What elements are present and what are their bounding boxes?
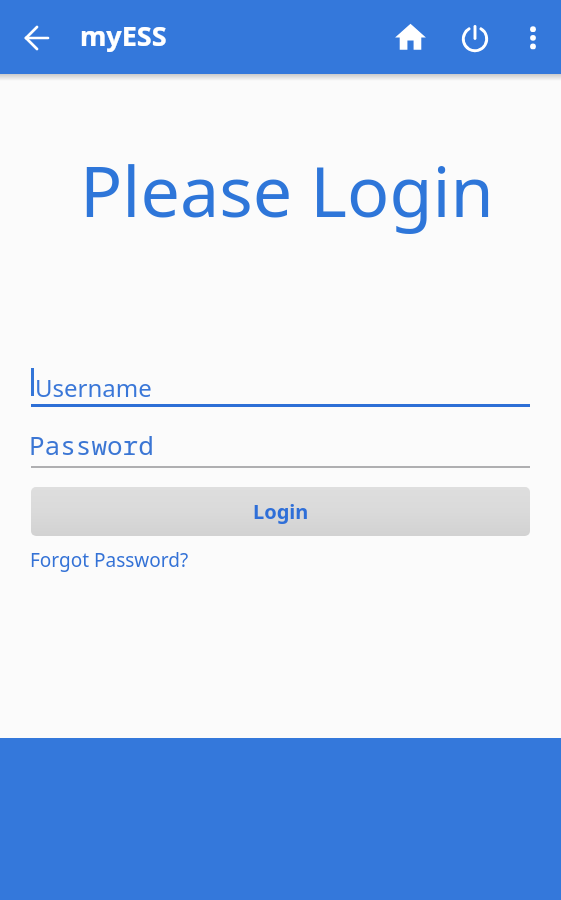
staticText: Please Login xyxy=(80,142,494,237)
button[interactable] xyxy=(513,18,553,58)
staticText: Username xyxy=(35,371,152,404)
button[interactable]: Forgot Password? xyxy=(30,547,189,573)
button[interactable]: Password xyxy=(31,425,530,468)
button[interactable]: Username xyxy=(31,360,530,407)
button[interactable] xyxy=(13,14,61,62)
staticText: Login xyxy=(253,498,309,525)
staticText: myESS xyxy=(80,17,167,54)
staticText: Password xyxy=(29,427,154,462)
button[interactable] xyxy=(453,15,497,59)
button[interactable]: Login xyxy=(31,487,530,536)
button[interactable] xyxy=(388,15,432,59)
